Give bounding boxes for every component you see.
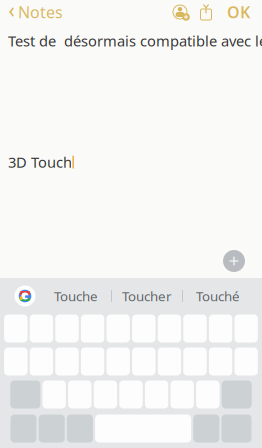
button[interactable]: Key <box>10 414 36 442</box>
staticText: Toucher <box>122 287 172 305</box>
button[interactable]: OK <box>219 0 258 24</box>
button[interactable]: Key <box>158 347 181 375</box>
button[interactable]: Add attachment <box>219 246 249 276</box>
button[interactable]: Touché <box>183 280 253 312</box>
button[interactable]: Key <box>209 347 232 375</box>
button[interactable]: Key <box>183 347 207 375</box>
button[interactable]: Key <box>132 347 155 375</box>
button[interactable]: Key <box>158 314 181 342</box>
button[interactable]: Key <box>10 380 40 408</box>
button[interactable]: Key <box>222 380 252 408</box>
button[interactable]: Key <box>94 380 117 408</box>
button[interactable]: Key <box>234 347 258 375</box>
staticText: OK <box>227 1 250 23</box>
button[interactable]: Touche <box>41 280 111 312</box>
button[interactable]: Key <box>145 380 168 408</box>
button[interactable]: Key <box>55 314 79 342</box>
button[interactable]: Key <box>55 347 79 375</box>
button[interactable]: Notes <box>0 0 69 24</box>
button[interactable]: Key <box>81 347 104 375</box>
button[interactable]: Key <box>4 347 27 375</box>
button[interactable]: Key <box>30 314 53 342</box>
button[interactable]: Key <box>196 380 219 408</box>
button[interactable]: Key <box>209 314 232 342</box>
button[interactable]: Share <box>193 0 219 24</box>
button[interactable]: Key <box>81 314 104 342</box>
button[interactable]: Key <box>106 347 130 375</box>
button[interactable]: Key <box>183 314 207 342</box>
staticText: Test de <box>8 31 60 50</box>
staticText: Touche <box>54 287 98 305</box>
button[interactable]: Key <box>39 414 65 442</box>
button[interactable]: Add People <box>167 0 193 24</box>
button[interactable]: Key <box>30 347 53 375</box>
staticText: Notes <box>18 1 63 23</box>
button[interactable]: Key <box>234 314 258 342</box>
staticText: désormais compatible avec le <box>60 31 262 50</box>
button[interactable]: Key <box>106 314 130 342</box>
button[interactable]: Key <box>42 380 66 408</box>
button[interactable]: Key <box>119 380 143 408</box>
button[interactable]: Toucher <box>112 280 182 312</box>
button[interactable]: Key <box>221 414 251 442</box>
staticText: 3D Touch <box>8 152 72 172</box>
button[interactable]: Key <box>67 414 93 442</box>
button[interactable]: Google <box>9 280 41 312</box>
button[interactable]: Key <box>132 314 155 342</box>
button[interactable]: Key <box>68 380 91 408</box>
button[interactable]: Key <box>170 380 194 408</box>
button[interactable]: Key <box>4 314 27 342</box>
button[interactable]: Key <box>193 414 219 442</box>
staticText: Touché <box>196 287 240 305</box>
